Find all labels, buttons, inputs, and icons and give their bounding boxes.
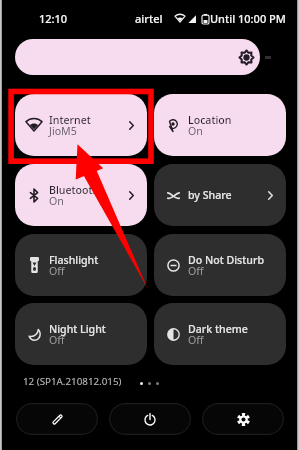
staticText: Off [49, 264, 65, 278]
staticText: 12:10 [39, 11, 68, 26]
button[interactable]: Settings [202, 403, 284, 435]
staticText: Until 10:00 PM [210, 11, 286, 26]
button[interactable]: Power [109, 403, 191, 435]
button[interactable]: Bluetooth [15, 164, 147, 226]
button[interactable]: Location [154, 94, 286, 156]
staticText: On [49, 194, 64, 208]
staticText: Dark theme [188, 322, 248, 336]
button[interactable]: Dark theme [154, 303, 286, 365]
other: Power [144, 413, 156, 425]
other: Battery [202, 14, 209, 24]
staticText: Off [188, 333, 204, 347]
button[interactable]: Night Light [15, 303, 147, 365]
button[interactable]: Edit tiles [16, 403, 98, 435]
staticText: Night Light [49, 322, 106, 336]
staticText: Location [188, 113, 232, 127]
button[interactable]: Internet [15, 94, 147, 156]
staticText: Bluetooth [49, 183, 100, 197]
button[interactable]: Nearby Share [154, 164, 286, 226]
staticText: Flashlight [49, 253, 99, 267]
other: Signal [188, 15, 196, 23]
staticText: Off [49, 333, 65, 347]
button[interactable]: Flashlight [15, 234, 147, 296]
staticText: JioM5 [49, 124, 77, 138]
staticText: 12 (SP1A.210812.015) [23, 375, 122, 388]
other: Wi-Fi [175, 15, 185, 22]
staticText: Off [188, 264, 204, 278]
staticText: Internet [49, 113, 91, 127]
button[interactable] [15, 39, 286, 75]
other: Edit tiles [51, 413, 64, 426]
staticText: airtel [135, 11, 163, 26]
button[interactable]: Do Not Disturb [154, 234, 286, 296]
staticText: Do Not Disturb [188, 253, 264, 267]
other: Settings [237, 413, 250, 426]
staticText: by Share [188, 188, 232, 202]
staticText: On [188, 124, 203, 138]
